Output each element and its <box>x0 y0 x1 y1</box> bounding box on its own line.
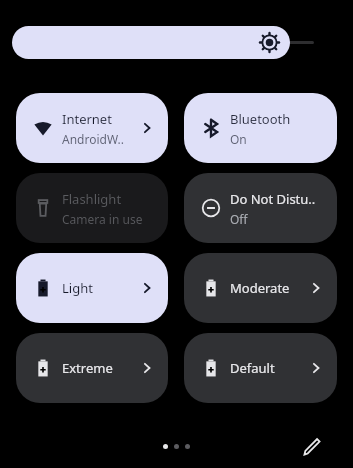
button[interactable]: Edit tiles <box>297 432 327 462</box>
staticText: Light <box>62 279 93 297</box>
button[interactable]: Brightness <box>12 26 290 59</box>
button[interactable]: Bluetooth <box>184 93 337 163</box>
button[interactable]: Extreme <box>16 333 168 403</box>
button[interactable]: Internet <box>16 93 168 163</box>
button[interactable]: Default <box>184 333 337 403</box>
button[interactable]: Light <box>16 253 168 323</box>
staticText: Extreme <box>62 359 113 377</box>
button[interactable]: Flashlight <box>16 173 168 243</box>
button[interactable]: Moderate <box>184 253 337 323</box>
staticText: Internet <box>62 110 112 128</box>
staticText: Off <box>230 211 248 227</box>
staticText: AndroidW.. <box>62 131 124 147</box>
staticText: Bluetooth <box>230 110 291 128</box>
staticText: On <box>230 131 247 147</box>
button[interactable]: Do Not Distu.. <box>184 173 337 243</box>
staticText: Default <box>230 359 275 377</box>
staticText: Flashlight <box>62 190 122 208</box>
staticText: Camera in use <box>62 211 143 227</box>
staticText: Do Not Distu.. <box>230 190 316 208</box>
staticText: Moderate <box>230 279 290 297</box>
